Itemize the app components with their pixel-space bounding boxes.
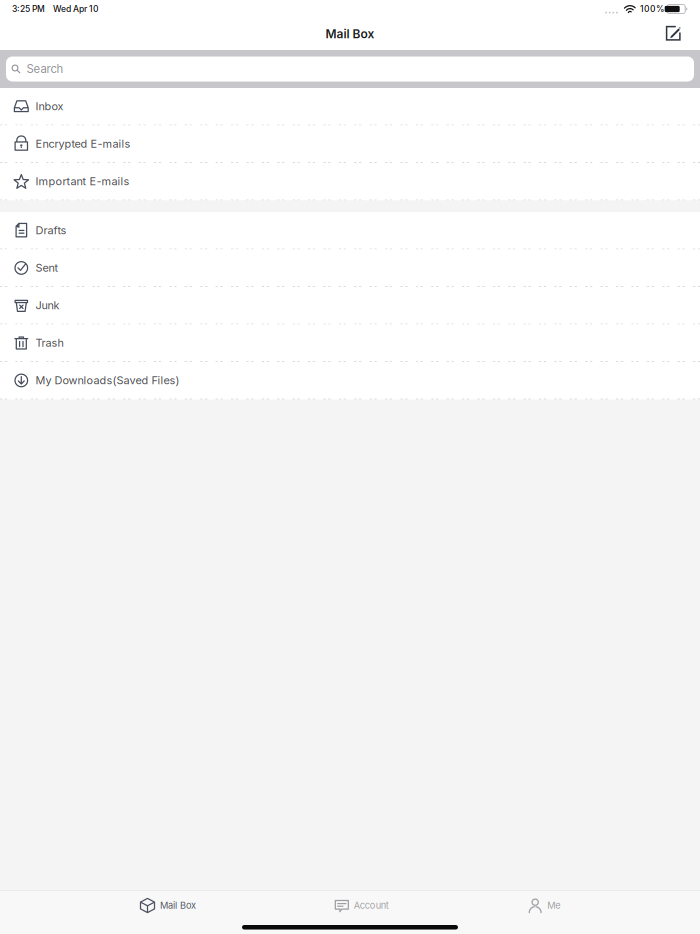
button[interactable]: Me [467,890,700,920]
button[interactable]: Account [233,890,467,920]
staticText: Wed Apr 10 [53,4,99,14]
staticText: Account [354,900,389,911]
staticText: 3:25 PM [12,4,45,14]
staticText: Mail Box [325,27,374,41]
button[interactable]: Trash [0,324,700,361]
staticText: Important E-mails [36,175,130,188]
button[interactable]: My Downloads(Saved Files) [0,362,700,398]
staticText: Inbox [36,100,64,113]
button[interactable]: Compose [659,20,689,48]
staticText: Sent [36,261,59,274]
staticText: Drafts [36,224,67,237]
staticText: My Downloads(Saved Files) [36,374,180,387]
button[interactable]: Inbox [0,88,700,124]
staticText: 100% [640,4,664,14]
staticText: Mail Box [160,900,196,911]
staticText: Junk [36,299,60,312]
staticText: Encrypted E-mails [36,137,131,150]
button[interactable]: Junk [0,287,700,323]
button[interactable]: Important E-mails [0,163,700,199]
button[interactable]: Drafts [0,212,700,248]
staticText: Search [26,62,63,76]
staticText: Trash [36,336,64,349]
button[interactable]: Mail Box [0,890,233,920]
button[interactable]: Encrypted E-mails [0,125,700,162]
staticText: Me [547,900,560,911]
button[interactable]: Sent [0,249,700,286]
